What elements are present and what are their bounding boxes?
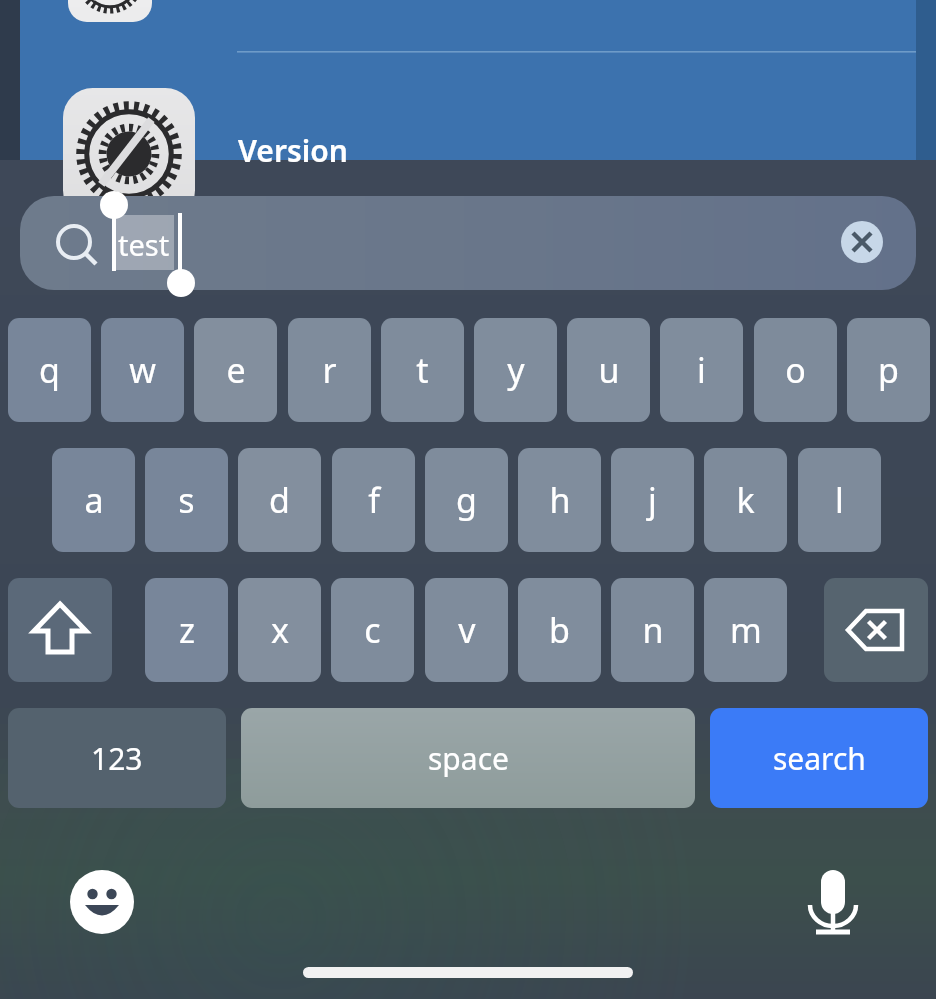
button[interactable]: t: [381, 318, 464, 422]
staticText: s: [178, 477, 195, 523]
button[interactable]: z: [145, 578, 228, 682]
button[interactable]: h: [518, 448, 601, 552]
staticText: a: [84, 477, 104, 523]
staticText: c: [364, 607, 381, 653]
button[interactable]: y: [474, 318, 557, 422]
staticText: u: [598, 347, 620, 393]
button[interactable]: b: [518, 578, 601, 682]
button[interactable]: space: [241, 708, 695, 808]
button[interactable]: w: [101, 318, 184, 422]
staticText: i: [697, 347, 706, 393]
staticText: e: [226, 347, 246, 393]
staticText: test: [118, 225, 170, 264]
button[interactable]: u: [567, 318, 650, 422]
button[interactable]: g: [425, 448, 508, 552]
button[interactable]: o: [754, 318, 837, 422]
staticText: f: [368, 477, 380, 523]
button[interactable]: p: [847, 318, 930, 422]
button[interactable]: d: [238, 448, 321, 552]
button[interactable]: f: [332, 448, 415, 552]
staticText: q: [39, 347, 60, 393]
staticText: p: [878, 347, 899, 393]
button[interactable]: Voice input: [802, 862, 864, 942]
button[interactable]: 123: [8, 708, 226, 808]
staticText: k: [736, 477, 755, 523]
button[interactable]: Shift: [8, 578, 112, 682]
staticText: x: [271, 607, 289, 653]
staticText: z: [179, 607, 195, 653]
button[interactable]: m: [704, 578, 787, 682]
staticText: t: [416, 347, 429, 393]
button[interactable]: s: [145, 448, 228, 552]
staticText: Version: [238, 130, 348, 171]
staticText: w: [129, 347, 156, 393]
button[interactable]: Emoji keyboard: [70, 870, 134, 934]
staticText: j: [648, 477, 657, 523]
button[interactable]: l: [798, 448, 881, 552]
button[interactable]: e: [194, 318, 277, 422]
staticText: n: [642, 607, 664, 653]
button[interactable]: x: [238, 578, 321, 682]
button[interactable]: Clear text: [841, 221, 883, 263]
button[interactable]: search: [710, 708, 928, 808]
button[interactable]: n: [611, 578, 694, 682]
button[interactable]: Backspace: [824, 578, 928, 682]
staticText: search: [773, 738, 866, 779]
button[interactable]: c: [331, 578, 414, 682]
staticText: v: [458, 607, 476, 653]
staticText: o: [785, 347, 806, 393]
staticText: y: [507, 347, 525, 393]
staticText: m: [730, 607, 762, 653]
button[interactable]: [20, 196, 916, 290]
staticText: 123: [91, 738, 143, 779]
button[interactable]: r: [288, 318, 371, 422]
staticText: b: [549, 607, 570, 653]
button[interactable]: a: [52, 448, 135, 552]
staticText: space: [428, 738, 509, 779]
staticText: l: [835, 477, 844, 523]
staticText: h: [549, 477, 571, 523]
staticText: g: [456, 477, 477, 523]
button[interactable]: v: [425, 578, 508, 682]
button[interactable]: i: [660, 318, 743, 422]
staticText: d: [269, 477, 290, 523]
button[interactable]: k: [704, 448, 787, 552]
staticText: r: [322, 347, 337, 393]
button[interactable]: q: [8, 318, 91, 422]
button[interactable]: j: [611, 448, 694, 552]
